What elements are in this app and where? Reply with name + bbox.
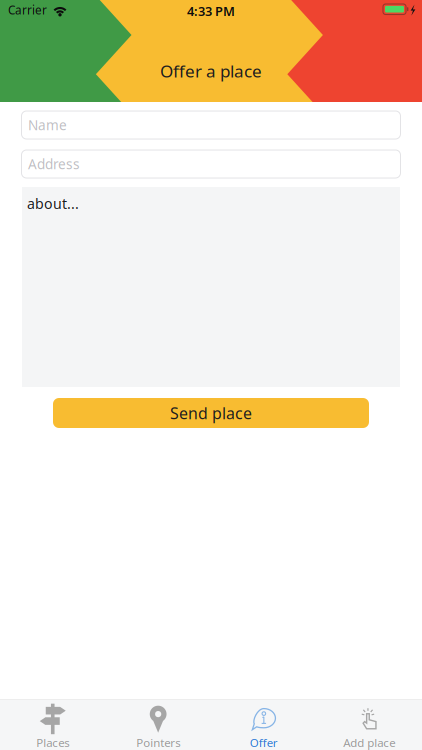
button[interactable]: about... xyxy=(22,187,400,387)
staticText: Offer xyxy=(250,735,278,750)
staticText: about... xyxy=(27,194,79,213)
staticText: Name xyxy=(28,116,67,134)
button[interactable]: Add place xyxy=(316,700,422,750)
staticText: Send place xyxy=(170,402,252,424)
button[interactable]: Name xyxy=(21,111,400,139)
button[interactable]: Pointers xyxy=(105,700,211,750)
staticText: Address xyxy=(28,155,80,173)
staticText: Pointers xyxy=(136,735,180,750)
staticText: 4:33 PM xyxy=(187,2,235,20)
button[interactable]: Send place xyxy=(53,398,369,428)
button[interactable]: Address xyxy=(21,150,400,178)
staticText: Add place xyxy=(343,735,395,750)
button[interactable]: Places xyxy=(0,700,105,750)
button[interactable]: Offer xyxy=(211,700,316,750)
staticText: Places xyxy=(36,735,69,750)
staticText: Offer a place xyxy=(160,59,262,83)
staticText: Carrier xyxy=(8,2,47,18)
